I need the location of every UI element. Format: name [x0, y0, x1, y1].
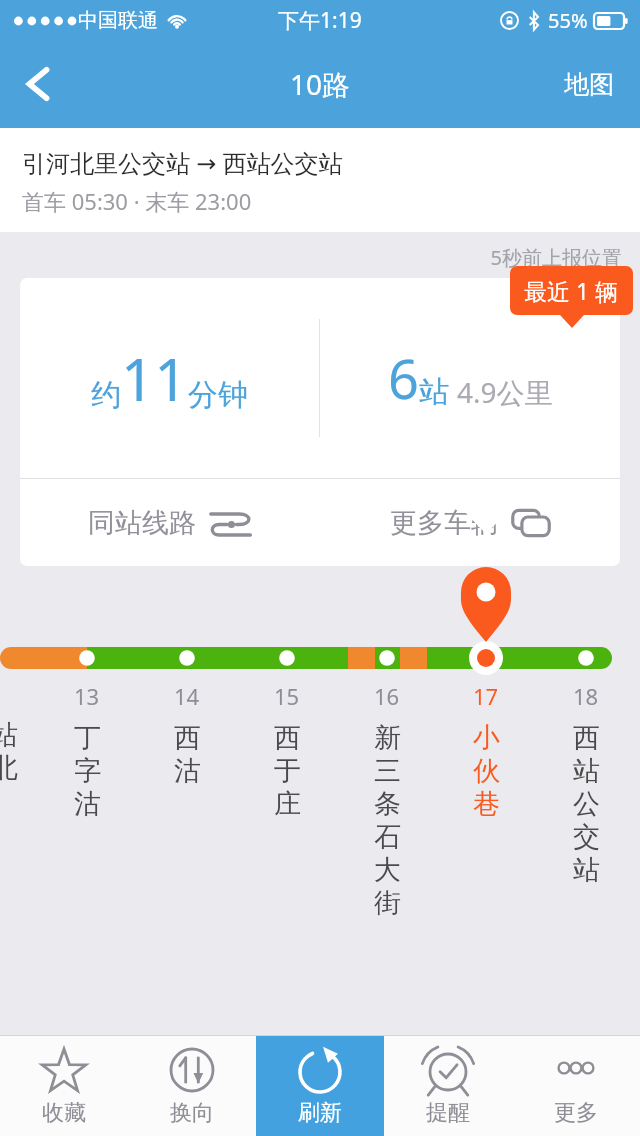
staticText: 换向: [170, 1099, 214, 1127]
staticText: 小 伙 巷: [473, 721, 500, 821]
button[interactable]: 最近 1 辆: [510, 266, 633, 315]
staticText: 提醒: [426, 1099, 470, 1127]
button[interactable]: 提醒: [384, 1036, 512, 1136]
staticText: 中国联通: [78, 8, 158, 33]
button[interactable]: 换向: [128, 1036, 256, 1136]
staticText: 站: [419, 373, 449, 411]
button[interactable]: 刷新: [256, 1036, 384, 1136]
staticText: 西 站 公 交 站: [573, 721, 600, 887]
staticText: 6: [388, 341, 419, 415]
staticText: 最近 1 辆: [524, 275, 619, 306]
button[interactable]: 14: [155, 681, 219, 788]
staticText: 4.9公里: [457, 373, 553, 411]
button[interactable]: 地图: [538, 40, 640, 128]
button[interactable]: 更多车辆: [320, 479, 620, 566]
button[interactable]: 15: [255, 681, 319, 821]
staticText: 5秒前上报位置: [0, 244, 622, 271]
staticText: 更多车辆: [390, 506, 498, 540]
staticText: 约: [91, 376, 121, 414]
staticText: 13: [74, 681, 100, 711]
staticText: 西 沽: [174, 721, 201, 788]
staticText: 同站线路: [88, 506, 196, 540]
staticText: 更多: [554, 1099, 598, 1127]
staticText: 10路: [290, 65, 351, 103]
button[interactable]: 同站线路: [20, 479, 320, 566]
staticText: 55%: [548, 7, 588, 34]
staticText: 引河北里公交站 → 西站公交站: [22, 146, 343, 179]
staticText: 11: [121, 339, 188, 418]
staticText: 16: [374, 681, 400, 711]
button[interactable]: 约: [20, 278, 319, 478]
staticText: 下午1:19: [278, 6, 362, 35]
staticText: 18: [573, 681, 599, 711]
staticText: 站 北: [0, 718, 18, 785]
staticText: 丁 字 沽: [74, 721, 101, 821]
staticText: 15: [274, 681, 300, 711]
staticText: 收藏: [42, 1099, 86, 1127]
button[interactable]: 16: [355, 681, 419, 920]
staticText: 14: [174, 681, 200, 711]
staticText: 新 三 条 石 大 街: [374, 721, 401, 920]
button[interactable]: Back: [0, 40, 76, 128]
staticText: 地图: [564, 69, 614, 100]
button[interactable]: 18: [554, 681, 618, 887]
staticText: 刷新: [298, 1099, 342, 1127]
staticText: 西 于 庄: [274, 721, 301, 821]
staticText: 17: [473, 681, 499, 711]
button[interactable]: 更多: [512, 1036, 640, 1136]
button[interactable]: 收藏: [0, 1036, 128, 1136]
staticText: 首车 05:30 · 末车 23:00: [22, 186, 252, 216]
button[interactable]: 6: [320, 278, 620, 478]
button[interactable]: 引河北里公交站 → 西站公交站: [0, 128, 640, 232]
staticText: 分钟: [188, 376, 248, 414]
button[interactable]: 13: [55, 681, 119, 821]
button[interactable]: 17: [454, 681, 518, 821]
